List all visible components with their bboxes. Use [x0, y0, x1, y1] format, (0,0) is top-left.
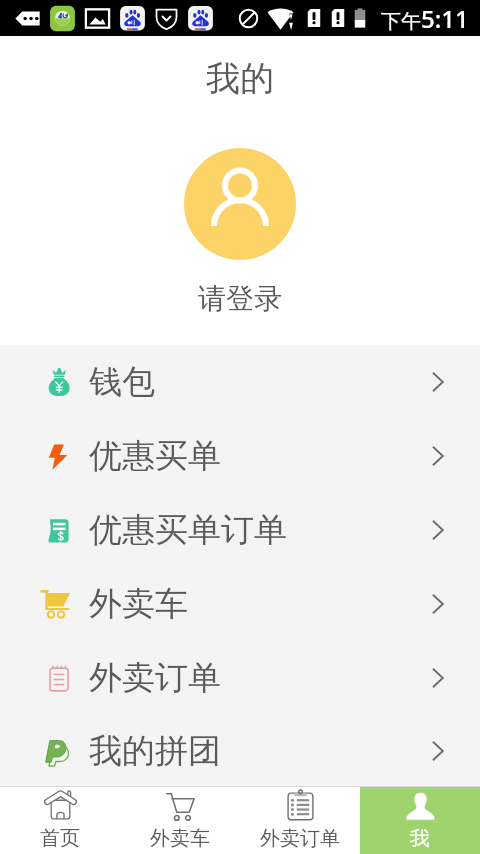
staticText: 5:11: [421, 2, 469, 35]
button[interactable]: 外卖车: [120, 787, 240, 854]
staticText: 我的拼团: [89, 730, 221, 772]
staticText: 我: [410, 826, 430, 851]
button[interactable]: 我: [360, 787, 480, 854]
staticText: 外卖车: [89, 583, 188, 625]
button[interactable]: 钱包: [0, 345, 480, 419]
staticText: 钱包: [89, 361, 155, 403]
staticText: 请登录: [198, 281, 282, 316]
staticText: 优惠买单: [89, 435, 221, 477]
staticText: 我的: [206, 57, 274, 100]
button[interactable]: 首页: [0, 787, 120, 854]
staticText: 外卖车: [150, 826, 210, 851]
staticText: 优惠买单订单: [89, 509, 287, 551]
staticText: 外卖订单: [260, 826, 340, 851]
button[interactable]: 外卖车: [0, 567, 480, 641]
staticText: 外卖订单: [89, 657, 221, 699]
staticText: 下午: [381, 9, 421, 34]
button[interactable]: Avatar: [184, 148, 296, 260]
button[interactable]: 优惠买单订单: [0, 493, 480, 567]
staticText: 首页: [40, 826, 80, 851]
button[interactable]: 我的拼团: [0, 715, 480, 786]
button[interactable]: 外卖订单: [0, 641, 480, 715]
button[interactable]: 外卖订单: [240, 787, 360, 854]
button[interactable]: 优惠买单: [0, 419, 480, 493]
